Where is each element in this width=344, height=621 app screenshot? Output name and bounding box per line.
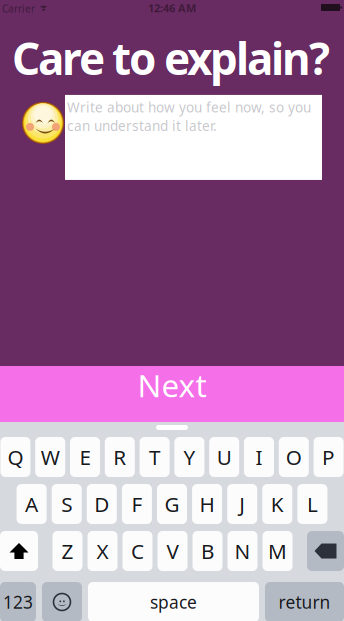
staticText: X bbox=[96, 537, 108, 565]
button[interactable]: Next bbox=[0, 366, 344, 422]
button[interactable]: V bbox=[157, 531, 187, 571]
staticText: Carrier bbox=[2, 2, 35, 15]
button[interactable]: P bbox=[314, 437, 344, 477]
staticText: B bbox=[201, 537, 214, 565]
button[interactable]: U bbox=[209, 437, 239, 477]
button[interactable]: Delete bbox=[307, 531, 344, 571]
button[interactable]: O bbox=[279, 437, 309, 477]
button[interactable]: F bbox=[122, 484, 152, 524]
staticText: M bbox=[268, 537, 287, 565]
button[interactable]: D bbox=[87, 484, 117, 524]
staticText: U bbox=[217, 443, 232, 471]
staticText: 12:46 AM bbox=[148, 1, 196, 15]
button[interactable]: Q bbox=[0, 437, 30, 477]
staticText: L bbox=[307, 490, 318, 518]
button[interactable]: Emoji keyboard bbox=[42, 582, 82, 621]
staticText: Z bbox=[61, 537, 73, 565]
staticText: T bbox=[149, 443, 160, 471]
button[interactable]: L bbox=[297, 484, 327, 524]
button[interactable]: Y bbox=[174, 437, 204, 477]
staticText: H bbox=[200, 490, 215, 518]
button[interactable]: E bbox=[70, 437, 100, 477]
staticText: A bbox=[25, 490, 38, 518]
button[interactable]: J bbox=[227, 484, 257, 524]
staticText: Y bbox=[183, 443, 195, 471]
staticText: Care to explain? bbox=[12, 28, 330, 88]
button[interactable]: T bbox=[140, 437, 170, 477]
staticText: return bbox=[278, 590, 330, 614]
staticText: N bbox=[234, 537, 250, 565]
button[interactable]: X bbox=[87, 531, 117, 571]
staticText: Next bbox=[137, 364, 206, 406]
button[interactable]: W bbox=[35, 437, 65, 477]
staticText: C bbox=[131, 537, 144, 565]
staticText: Q bbox=[7, 443, 23, 471]
button[interactable]: G bbox=[157, 484, 187, 524]
button[interactable]: space bbox=[88, 582, 259, 621]
button[interactable]: Z bbox=[52, 531, 82, 571]
staticText: K bbox=[271, 490, 284, 518]
staticText: J bbox=[239, 490, 245, 518]
button[interactable]: I bbox=[244, 437, 274, 477]
staticText: W bbox=[41, 443, 60, 471]
staticText: O bbox=[286, 443, 302, 471]
staticText: R bbox=[113, 443, 126, 471]
staticText: D bbox=[94, 490, 109, 518]
button[interactable]: S bbox=[52, 484, 82, 524]
staticText: E bbox=[79, 443, 90, 471]
staticText: 123 bbox=[3, 590, 33, 614]
button[interactable]: K bbox=[262, 484, 292, 524]
button[interactable]: 123 bbox=[0, 582, 36, 621]
staticText: I bbox=[255, 443, 262, 471]
button[interactable]: M bbox=[262, 531, 292, 571]
staticText: Write about how you feel now, so you can… bbox=[67, 98, 311, 135]
button[interactable]: A bbox=[17, 484, 47, 524]
button[interactable]: C bbox=[122, 531, 152, 571]
button[interactable]: R bbox=[105, 437, 135, 477]
button[interactable]: Shift bbox=[0, 531, 38, 571]
button[interactable]: N bbox=[227, 531, 257, 571]
staticText: space bbox=[150, 590, 197, 614]
button[interactable]: return bbox=[265, 582, 344, 621]
button[interactable]: B bbox=[192, 531, 222, 571]
staticText: V bbox=[166, 537, 178, 565]
staticText: G bbox=[164, 490, 179, 518]
staticText: F bbox=[131, 490, 142, 518]
staticText: S bbox=[61, 490, 72, 518]
staticText: P bbox=[322, 443, 335, 471]
button[interactable]: H bbox=[192, 484, 222, 524]
